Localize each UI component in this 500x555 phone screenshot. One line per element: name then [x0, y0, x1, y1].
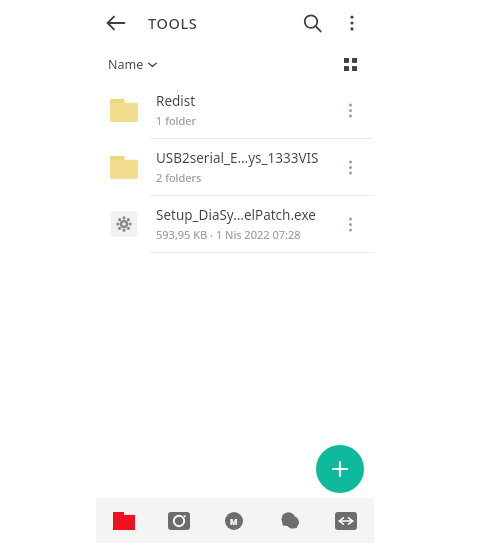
- button[interactable]: USB2serial_E…ys_1333VIS: [96, 139, 374, 196]
- button[interactable]: Item options: [332, 92, 368, 128]
- button[interactable]: Grid view: [334, 48, 366, 80]
- button[interactable]: Item options: [332, 149, 368, 185]
- staticText: Setup_DiaSy…elPatch.exe: [156, 206, 316, 224]
- button[interactable]: Search: [292, 3, 332, 43]
- button[interactable]: Add: [316, 445, 364, 493]
- button[interactable]: Setup_DiaSy…elPatch.exe: [96, 196, 374, 253]
- button[interactable]: Back: [96, 3, 136, 43]
- staticText: Name: [108, 56, 144, 73]
- staticText: TOOLS: [148, 13, 198, 33]
- staticText: USB2serial_E…ys_1333VIS: [156, 149, 319, 167]
- staticText: 593,95 KB · 1 Nis 2022 07:28: [156, 227, 301, 242]
- staticText: 1 folder: [156, 113, 196, 128]
- button[interactable]: Resize: [318, 498, 374, 543]
- button[interactable]: More options: [332, 3, 372, 43]
- button[interactable]: Files: [96, 498, 151, 543]
- staticText: 2 folders: [156, 170, 202, 185]
- button[interactable]: Name: [106, 52, 159, 77]
- staticText: Redist: [156, 92, 196, 110]
- button[interactable]: Item options: [332, 206, 368, 242]
- button[interactable]: Camera: [151, 498, 206, 543]
- staticText: M: [230, 516, 238, 527]
- button[interactable]: Messages: [262, 498, 318, 543]
- button[interactable]: Redist: [96, 82, 374, 139]
- button[interactable]: Gmail: [206, 498, 262, 543]
